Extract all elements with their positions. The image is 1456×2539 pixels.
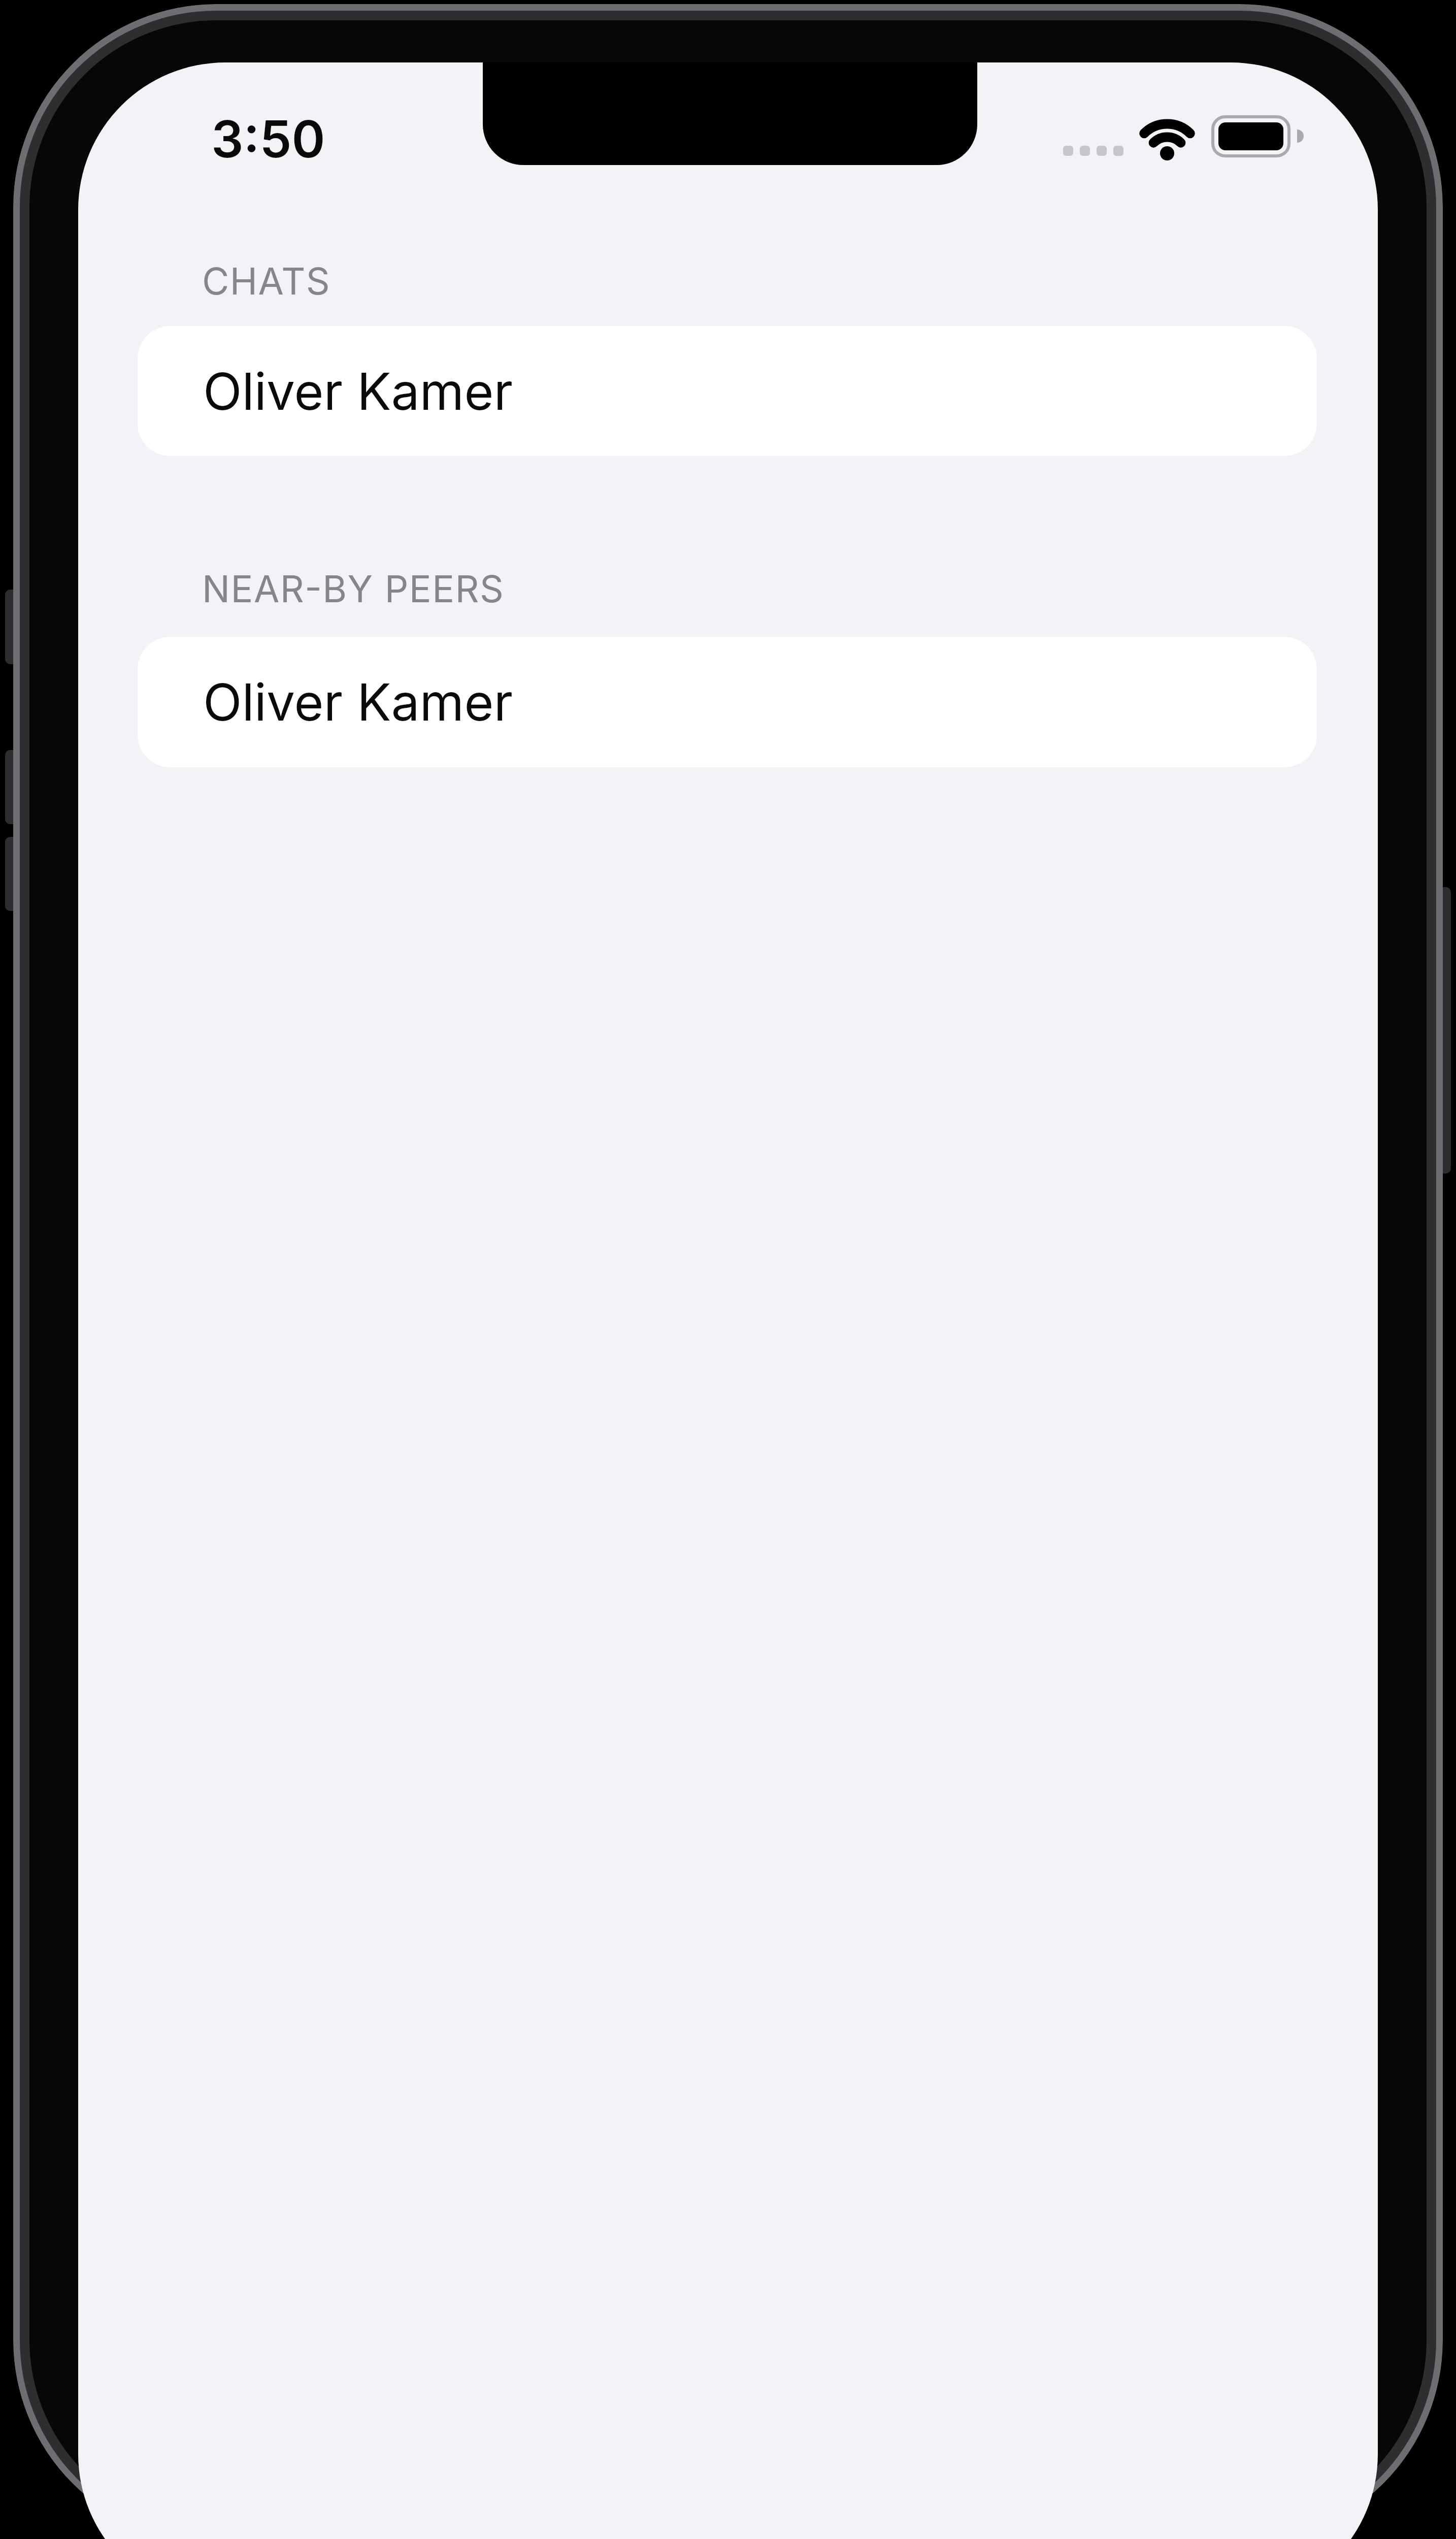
button[interactable]: Oliver Kamer	[138, 326, 1317, 456]
staticText: Oliver Kamer	[203, 671, 513, 733]
button[interactable]: Oliver Kamer	[138, 637, 1317, 767]
staticText: Oliver Kamer	[203, 361, 513, 422]
staticText: CHATS	[202, 258, 331, 303]
staticText: NEAR-BY PEERS	[202, 566, 505, 611]
staticText: 3:50	[211, 108, 325, 170]
